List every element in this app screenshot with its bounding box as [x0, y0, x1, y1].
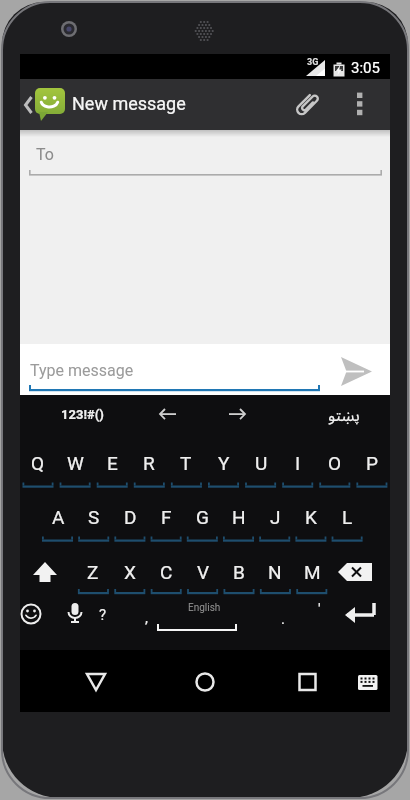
- button[interactable]: To: [20, 130, 390, 180]
- button[interactable]: W: [58, 437, 92, 489]
- button[interactable]: A: [41, 491, 75, 543]
- staticText: V: [197, 561, 210, 583]
- staticText: S: [88, 506, 100, 528]
- button[interactable]: [305, 598, 335, 643]
- staticText: O: [328, 452, 342, 474]
- button[interactable]: F: [149, 491, 183, 543]
- button[interactable]: [148, 397, 188, 431]
- staticText: ': [318, 600, 321, 618]
- button[interactable]: [185, 658, 225, 702]
- button[interactable]: J: [258, 491, 292, 543]
- staticText: A: [52, 506, 65, 528]
- button[interactable]: [155, 598, 240, 643]
- staticText: M: [304, 561, 321, 583]
- button[interactable]: [60, 598, 95, 643]
- staticText: پښتو: [328, 404, 360, 426]
- button[interactable]: I: [281, 437, 315, 489]
- staticText: X: [124, 561, 136, 583]
- button[interactable]: [217, 397, 257, 431]
- button[interactable]: N: [258, 546, 292, 598]
- button[interactable]: New message: [20, 79, 240, 130]
- button[interactable]: G: [185, 491, 219, 543]
- staticText: E: [107, 452, 118, 474]
- button[interactable]: H: [222, 491, 256, 543]
- button[interactable]: [20, 598, 60, 643]
- staticText: New message: [72, 93, 186, 114]
- staticText: R: [143, 452, 155, 474]
- button[interactable]: [20, 543, 72, 593]
- staticText: To: [36, 145, 54, 164]
- staticText: 3G: [307, 57, 319, 68]
- button[interactable]: T: [169, 437, 203, 489]
- staticText: K: [305, 506, 317, 528]
- staticText: 3:05: [351, 59, 380, 77]
- staticText: U: [255, 452, 268, 474]
- button[interactable]: X: [113, 546, 147, 598]
- staticText: Y: [218, 452, 230, 474]
- staticText: J: [270, 506, 281, 528]
- button[interactable]: [95, 598, 130, 643]
- staticText: English: [188, 602, 221, 614]
- staticText: T: [180, 452, 192, 474]
- staticText: D: [124, 506, 137, 528]
- button[interactable]: Type message: [20, 344, 320, 395]
- button[interactable]: Q: [21, 437, 55, 489]
- staticText: ?: [99, 606, 107, 624]
- staticText: N: [268, 561, 282, 583]
- button[interactable]: B: [222, 546, 256, 598]
- button[interactable]: M: [295, 546, 329, 598]
- staticText: Z: [87, 561, 99, 583]
- button[interactable]: [348, 658, 388, 702]
- button[interactable]: D: [113, 491, 147, 543]
- staticText: L: [342, 506, 353, 528]
- button[interactable]: [279, 658, 319, 702]
- button[interactable]: K: [294, 491, 328, 543]
- staticText: W: [67, 452, 84, 474]
- staticText: ,: [145, 609, 148, 627]
- staticText: F: [161, 506, 172, 528]
- button[interactable]: [270, 598, 300, 643]
- staticText: C: [160, 561, 173, 583]
- button[interactable]: پښتو: [314, 398, 374, 432]
- staticText: H: [232, 506, 246, 528]
- staticText: P: [366, 452, 378, 474]
- button[interactable]: C: [149, 546, 183, 598]
- button[interactable]: L: [330, 491, 364, 543]
- button[interactable]: Z: [76, 546, 110, 598]
- button[interactable]: Y: [207, 437, 241, 489]
- button[interactable]: S: [77, 491, 111, 543]
- button[interactable]: [76, 658, 116, 702]
- staticText: .: [281, 610, 285, 628]
- button[interactable]: [130, 598, 155, 643]
- staticText: Q: [31, 452, 45, 474]
- button[interactable]: U: [244, 437, 278, 489]
- button[interactable]: [342, 84, 382, 126]
- staticText: G: [196, 506, 209, 528]
- staticText: I: [295, 452, 301, 474]
- button[interactable]: O: [318, 437, 352, 489]
- button[interactable]: [345, 598, 390, 643]
- button[interactable]: V: [186, 546, 220, 598]
- button[interactable]: R: [132, 437, 166, 489]
- button[interactable]: 123!#(): [40, 397, 125, 431]
- button[interactable]: P: [355, 437, 389, 489]
- button[interactable]: [285, 83, 329, 127]
- button[interactable]: [338, 543, 390, 593]
- staticText: B: [233, 561, 245, 583]
- staticText: 123!#(): [61, 407, 104, 422]
- staticText: Type message: [30, 361, 134, 380]
- button[interactable]: [334, 352, 382, 392]
- button[interactable]: E: [95, 437, 129, 489]
